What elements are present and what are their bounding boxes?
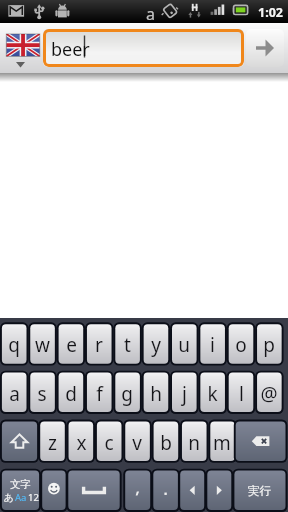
button[interactable]: i: [198, 322, 226, 365]
staticText: a: [146, 3, 155, 25]
staticText: x: [76, 430, 87, 456]
staticText: 12: [28, 491, 39, 504]
staticText: 文字: [10, 478, 31, 491]
staticText: b: [160, 430, 172, 456]
staticText: z: [48, 430, 57, 456]
button[interactable]: x: [67, 420, 95, 463]
staticText: v: [132, 430, 142, 456]
button[interactable]: z: [38, 420, 66, 463]
button[interactable]: Space: [66, 469, 121, 512]
staticText: a: [9, 381, 20, 407]
staticText: r: [95, 332, 103, 358]
staticText: j: [182, 381, 187, 407]
button[interactable]: s: [28, 371, 56, 414]
button[interactable]: @: [255, 371, 283, 414]
button[interactable]: j: [170, 371, 198, 414]
staticText: e: [66, 332, 77, 358]
staticText: @: [260, 381, 278, 407]
button[interactable]: q: [0, 322, 28, 365]
staticText: s: [37, 381, 47, 407]
button[interactable]: f: [85, 371, 113, 414]
button[interactable]: h: [142, 371, 170, 414]
button[interactable]: Cursor left: [178, 469, 206, 512]
staticText: l: [239, 381, 244, 407]
staticText: q: [8, 332, 20, 358]
staticText: o: [235, 332, 247, 358]
button[interactable]: a: [0, 371, 28, 414]
staticText: d: [65, 381, 77, 407]
button[interactable]: w: [28, 322, 56, 365]
staticText: y: [151, 332, 161, 358]
staticText: Aa: [15, 491, 27, 504]
staticText: beer: [51, 37, 90, 62]
staticText: f: [96, 381, 103, 407]
button[interactable]: Cursor right: [205, 469, 233, 512]
staticText: m: [213, 430, 231, 456]
staticText: k: [207, 381, 218, 407]
button[interactable]: n: [180, 420, 208, 463]
button[interactable]: d: [57, 371, 85, 414]
button[interactable]: Delete: [234, 420, 288, 463]
button[interactable]: v: [123, 420, 151, 463]
staticText: h: [150, 381, 162, 407]
staticText: t: [124, 332, 131, 358]
button[interactable]: Comma: [123, 469, 152, 512]
button[interactable]: Shift: [0, 420, 39, 463]
button[interactable]: Emoji: [40, 469, 67, 512]
button[interactable]: c: [95, 420, 123, 463]
button[interactable]: k: [198, 371, 226, 414]
staticText: i: [210, 332, 215, 358]
staticText: w: [35, 332, 50, 358]
button[interactable]: u: [170, 322, 198, 365]
button[interactable]: m: [208, 420, 236, 463]
button[interactable]: y: [142, 322, 170, 365]
button[interactable]: l: [227, 371, 255, 414]
staticText: g: [121, 381, 133, 407]
staticText: u: [178, 332, 190, 358]
staticText: n: [188, 430, 200, 456]
staticText: 実行: [248, 484, 271, 498]
staticText: c: [104, 430, 114, 456]
staticText: 1:02: [258, 4, 283, 21]
staticText: あ: [4, 492, 14, 504]
button[interactable]: p: [255, 322, 283, 365]
button[interactable]: g: [113, 371, 141, 414]
staticText: p: [263, 332, 275, 358]
button[interactable]: Enter: [233, 469, 288, 512]
button[interactable]: b: [152, 420, 180, 463]
button[interactable]: e: [57, 322, 85, 365]
button[interactable]: r: [85, 322, 113, 365]
button[interactable]: Period: [151, 469, 179, 512]
button[interactable]: Select input language: [0, 23, 43, 73]
button[interactable]: Search: [246, 29, 284, 67]
button[interactable]: Change input mode: [0, 469, 41, 512]
button[interactable]: o: [227, 322, 255, 365]
button[interactable]: beer: [43, 29, 244, 67]
button[interactable]: t: [113, 322, 141, 365]
